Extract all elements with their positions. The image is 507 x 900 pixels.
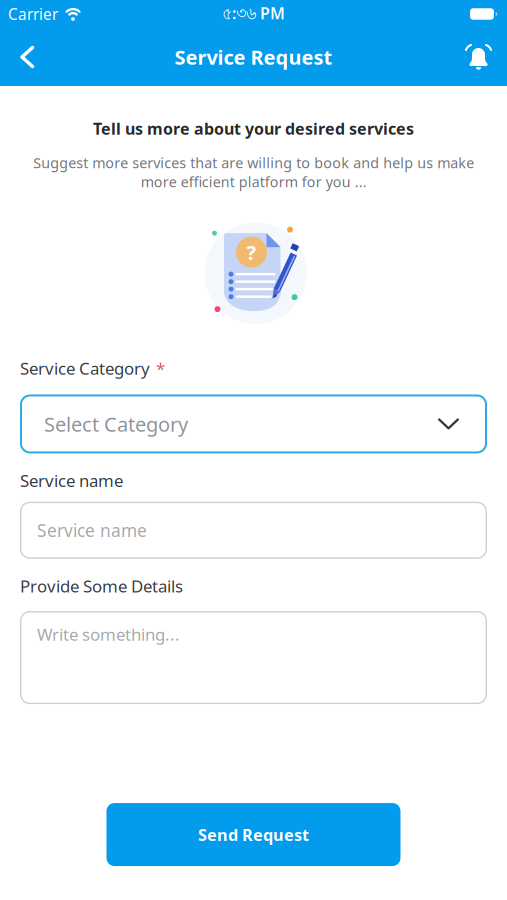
staticText: ? xyxy=(246,239,256,265)
button[interactable]: Back xyxy=(0,31,36,82)
staticText: * xyxy=(156,357,165,379)
staticText: Provide Some Details xyxy=(20,575,183,597)
staticText: Write something... xyxy=(37,623,180,645)
staticText: Send Request xyxy=(198,824,309,845)
button[interactable]: Send Request xyxy=(106,803,400,866)
button[interactable]: Notifications xyxy=(464,30,507,84)
staticText: Select Category xyxy=(44,411,188,437)
button[interactable]: Select Category xyxy=(20,394,487,453)
staticText: Tell us more about your desired services xyxy=(93,118,414,139)
staticText: Service Category xyxy=(20,357,150,379)
staticText: Suggest more services that are willing t… xyxy=(33,153,474,191)
staticText: Service name xyxy=(37,519,147,542)
button[interactable]: Service name xyxy=(20,502,487,559)
staticText: ৫:৩৬ PM xyxy=(222,2,285,26)
staticText: Service Request xyxy=(174,44,332,70)
staticText: Service name xyxy=(20,469,123,492)
staticText: Carrier xyxy=(8,4,58,24)
button[interactable]: Write something xyxy=(20,611,487,704)
